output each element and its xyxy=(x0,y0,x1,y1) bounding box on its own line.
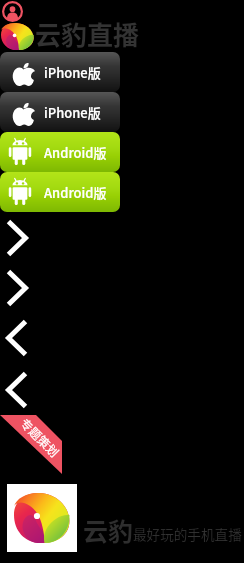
staticText: 云豹直播 xyxy=(35,15,140,53)
button[interactable]: Previous xyxy=(6,319,28,357)
staticText: Android版 xyxy=(44,183,107,202)
staticText: iPhone版 xyxy=(44,63,101,82)
button[interactable]: Android版 xyxy=(0,172,120,212)
button[interactable]: iPhone版 xyxy=(0,92,120,132)
button[interactable]: iPhone版 xyxy=(0,52,120,92)
button[interactable]: Next xyxy=(6,269,28,307)
staticText: 专题策划 xyxy=(17,414,64,461)
button[interactable]: Previous xyxy=(6,371,28,409)
button[interactable]: Android版 xyxy=(0,132,120,172)
button[interactable]: Next xyxy=(6,219,28,257)
button[interactable]: Account xyxy=(2,1,23,22)
button[interactable] xyxy=(7,484,77,552)
button[interactable]: 专题策划 xyxy=(0,415,62,475)
staticText: 云豹 xyxy=(83,512,134,548)
staticText: Android版 xyxy=(44,143,107,162)
staticText: iPhone版 xyxy=(44,103,101,122)
staticText: 最好玩的手机直播 xyxy=(133,524,242,544)
